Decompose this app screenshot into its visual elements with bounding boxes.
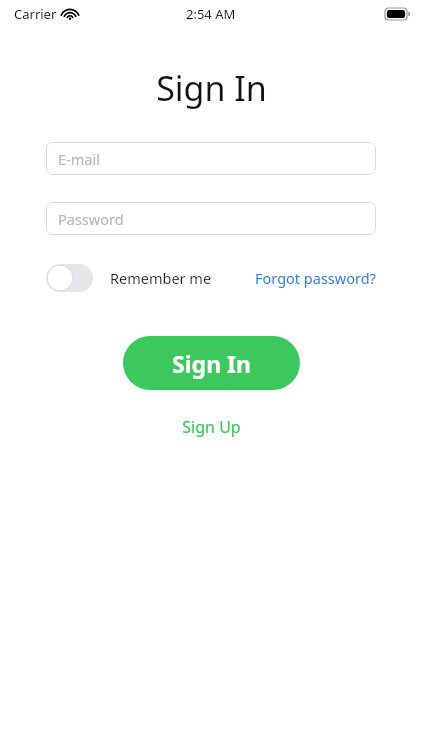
button[interactable]: Sign Up	[172, 411, 251, 443]
button[interactable]: Password	[46, 202, 376, 235]
other: Remember me toggle	[46, 264, 93, 292]
staticText: E-mail	[58, 149, 100, 169]
button[interactable]: Sign In	[123, 336, 300, 390]
button[interactable]: Remember me toggle	[46, 264, 216, 292]
button[interactable]: E-mail	[46, 142, 376, 175]
staticText: Carrier	[14, 5, 57, 23]
staticText: Remember me	[110, 268, 212, 288]
staticText: 2:54 AM	[186, 5, 236, 23]
staticText: Password	[58, 209, 124, 229]
staticText: Sign In	[156, 65, 267, 111]
button[interactable]: Forgot password?	[255, 264, 376, 292]
staticText: Forgot password?	[255, 268, 376, 288]
staticText: Sign In	[172, 348, 251, 379]
staticText: Sign Up	[182, 416, 241, 438]
